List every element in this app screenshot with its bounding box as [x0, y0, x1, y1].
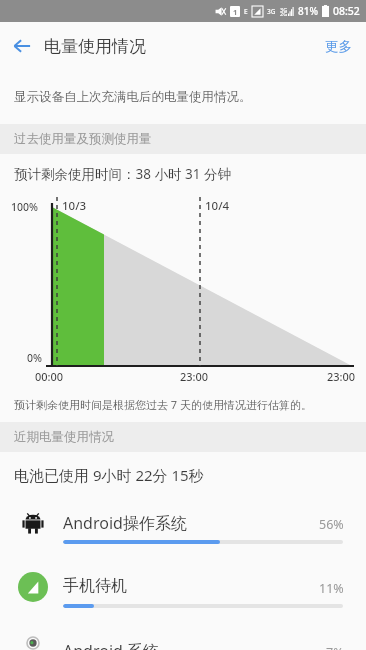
staticText: E [244, 7, 248, 16]
staticText: 81% [298, 4, 318, 18]
staticText: 预计剩余使用时间是根据您过去 7 天的使用情况进行估算的。 [14, 397, 313, 412]
staticText: 7% [326, 644, 344, 650]
staticText: 23:00 [180, 369, 209, 384]
staticText: 2G [280, 10, 288, 17]
staticText: 电池已使用 9小时 22分 15秒 [14, 465, 204, 485]
staticText: 56% [319, 516, 344, 533]
staticText: 手机待机 [63, 576, 127, 596]
staticText: 11% [319, 580, 344, 597]
staticText: Android操作系统 [63, 512, 187, 534]
button[interactable]: Android 系统 [0, 626, 366, 650]
staticText: 10/4 [205, 198, 230, 214]
staticText: 1 [233, 7, 238, 17]
staticText: Android 系统 [63, 640, 160, 650]
button[interactable]: Android操作系统 [0, 498, 366, 562]
staticText: 100% [11, 200, 38, 214]
staticText: 3G [280, 6, 288, 13]
staticText: 更多 [325, 38, 352, 55]
staticText: 00:00 [35, 369, 64, 384]
staticText: 电量使用情况 [44, 36, 146, 57]
button[interactable]: 更多 [311, 28, 366, 65]
staticText: 23:00 [327, 369, 356, 384]
button[interactable]: Back [0, 24, 44, 68]
staticText: 10/3 [62, 198, 87, 214]
staticText: 过去使用量及预测使用量 [14, 131, 152, 147]
staticText: 近期电量使用情况 [14, 429, 114, 445]
staticText: 0% [27, 351, 42, 365]
staticText: 08:52 [333, 4, 360, 18]
button[interactable]: 手机待机 [0, 562, 366, 626]
staticText: 3G [267, 7, 276, 16]
staticText: 预计剩余使用时间：38 小时 31 分钟 [14, 165, 231, 183]
staticText: 显示设备自上次充满电后的电量使用情况。 [14, 89, 252, 105]
